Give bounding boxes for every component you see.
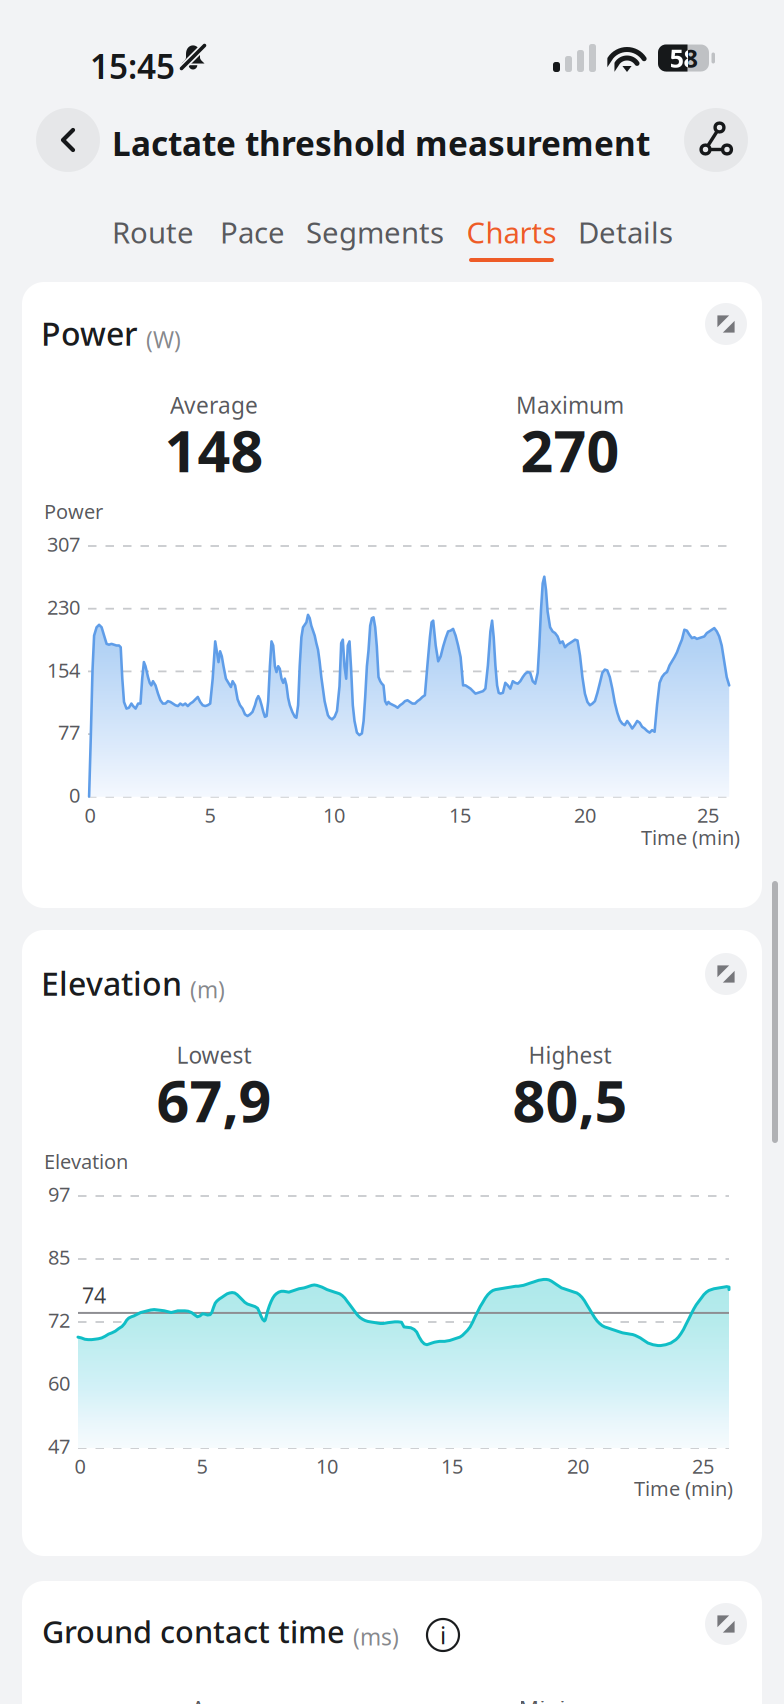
staticText: 72 (48, 1307, 70, 1333)
button[interactable]: Details (568, 214, 683, 272)
staticText: 5 (196, 1453, 207, 1479)
staticText: 25 (692, 1453, 714, 1479)
staticText: Elevation (41, 962, 182, 1004)
staticText: 0 (69, 782, 80, 808)
staticText: 25 (697, 802, 719, 828)
staticText: Pace (220, 212, 285, 251)
staticText: Ground contact time (42, 1611, 345, 1652)
staticText: (W) (146, 324, 181, 354)
staticText: Time (min) (641, 824, 740, 851)
staticText: 80,5 (512, 1062, 627, 1138)
button[interactable]: Back (36, 108, 100, 172)
staticText: Lactate threshold measurement (112, 121, 650, 165)
staticText: 20 (574, 802, 596, 828)
staticText: 60 (48, 1370, 70, 1396)
staticText: Route (112, 212, 194, 251)
staticText: 230 (47, 594, 80, 620)
staticText: 0 (74, 1453, 85, 1479)
button[interactable]: Charts (455, 214, 568, 272)
staticText: 20 (567, 1453, 589, 1479)
staticText: Average (170, 390, 258, 420)
button[interactable]: Share (684, 108, 748, 172)
staticText: Power (44, 498, 103, 525)
staticText: 77 (58, 719, 80, 745)
staticText: Minimum (518, 1694, 621, 1704)
staticText: Avg. (191, 1694, 237, 1704)
button[interactable]: Expand chart (705, 953, 747, 995)
button[interactable]: Segments (297, 214, 453, 272)
staticText: Elevation (44, 1148, 128, 1175)
staticText: Highest (528, 1040, 611, 1070)
staticText: 148 (164, 412, 263, 488)
button[interactable]: Info (427, 1619, 459, 1651)
staticText: 15:45 (90, 44, 175, 88)
staticText: 58 (669, 41, 697, 75)
staticText: 154 (47, 657, 80, 683)
staticText: Power (41, 312, 138, 354)
staticText: 0 (84, 802, 95, 828)
staticText: 97 (48, 1181, 70, 1207)
staticText: Charts (466, 212, 556, 251)
staticText: Details (578, 212, 673, 251)
staticText: 74 (82, 1281, 106, 1309)
button[interactable]: Expand chart (705, 1603, 747, 1645)
staticText: 15 (449, 802, 471, 828)
staticText: Lowest (176, 1040, 251, 1070)
staticText: 85 (48, 1244, 70, 1270)
staticText: 270 (520, 412, 619, 488)
staticText: 5 (204, 802, 215, 828)
staticText: Maximum (516, 390, 624, 420)
staticText: 15 (441, 1453, 463, 1479)
button[interactable]: Pace (208, 214, 297, 272)
staticText: 10 (323, 802, 345, 828)
button[interactable]: Route (100, 214, 206, 272)
staticText: (ms) (353, 1622, 399, 1652)
staticText: i (440, 1619, 446, 1651)
staticText: 307 (47, 531, 80, 557)
staticText: 47 (48, 1433, 70, 1459)
staticText: Segments (306, 212, 444, 251)
staticText: 58 (669, 41, 697, 75)
staticText: (m) (190, 974, 225, 1004)
button[interactable]: Expand chart (705, 303, 747, 345)
staticText: Time (min) (634, 1475, 733, 1502)
staticText: 67,9 (156, 1062, 271, 1138)
staticText: 10 (316, 1453, 338, 1479)
